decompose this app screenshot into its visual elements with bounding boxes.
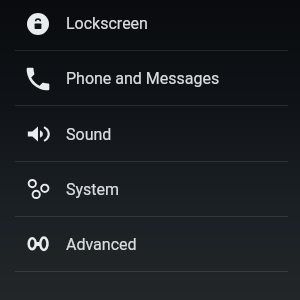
staticText: Advanced <box>66 235 137 254</box>
staticText: Lockscreen <box>66 14 148 33</box>
button[interactable]: Lockscreen <box>0 0 300 51</box>
staticText: Phone and Messages <box>66 69 220 88</box>
staticText: System <box>66 180 120 199</box>
other: System <box>26 178 50 202</box>
staticText: Sound <box>66 125 112 144</box>
button[interactable]: System <box>0 162 300 217</box>
other: Phone and Messages <box>26 67 50 91</box>
other: Advanced <box>26 233 50 257</box>
button[interactable]: Advanced <box>0 217 300 272</box>
button[interactable]: Sound <box>0 106 300 162</box>
other: Sound <box>26 122 50 146</box>
other: Lockscreen <box>26 12 50 36</box>
button[interactable]: Phone and Messages <box>0 51 300 106</box>
